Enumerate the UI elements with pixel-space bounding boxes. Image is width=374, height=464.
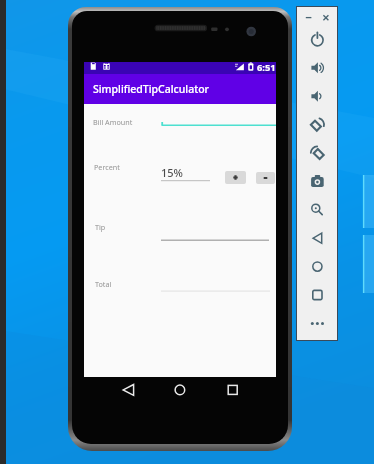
button[interactable]: SimplifiedTipCalculator: [84, 74, 276, 104]
button[interactable]: Increase percent: [225, 171, 246, 184]
button[interactable]: Total: [95, 279, 112, 289]
button[interactable]: Tip: [95, 222, 106, 232]
staticText: 6:51: [257, 61, 276, 73]
button[interactable]: Bill Amount: [93, 117, 133, 127]
staticText: 15%: [161, 165, 183, 180]
staticText: SimplifiedTipCalculator: [93, 82, 210, 96]
button[interactable]: Decrease percent: [256, 172, 275, 184]
button[interactable]: Percent: [94, 162, 120, 172]
